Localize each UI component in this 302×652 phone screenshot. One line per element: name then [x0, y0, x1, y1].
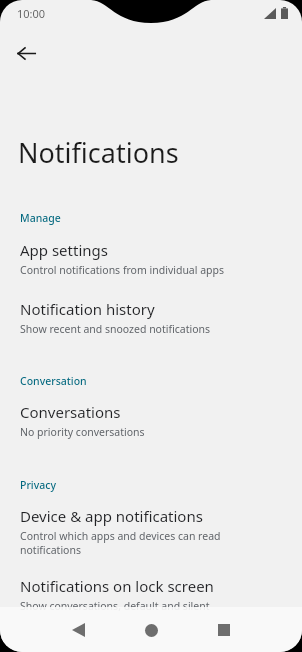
button[interactable]: Back: [58, 610, 98, 650]
staticText: Control which apps and devices can read …: [20, 529, 221, 557]
staticText: Manage: [20, 211, 61, 225]
staticText: Show conversations, default and silent: [20, 599, 210, 613]
button[interactable]: Back: [8, 35, 44, 71]
staticText: No priority conversations: [20, 425, 145, 439]
staticText: Conversation: [20, 374, 87, 388]
staticText: Privacy: [20, 478, 56, 492]
staticText: Notifications: [18, 134, 179, 171]
staticText: Notifications on lock screen: [20, 576, 214, 596]
button[interactable]: Home: [131, 610, 171, 650]
button[interactable]: Recent apps: [204, 610, 244, 650]
staticText: Control notifications from individual ap…: [20, 263, 225, 277]
button[interactable]: App settings: [0, 240, 302, 277]
staticText: Notification history: [20, 299, 155, 319]
staticText: Device & app notifications: [20, 506, 203, 526]
button[interactable]: Conversations: [0, 402, 302, 439]
button[interactable]: Device & app notifications: [0, 506, 302, 557]
staticText: 10:00: [17, 6, 46, 21]
staticText: Show recent and snoozed notifications: [20, 322, 211, 336]
button[interactable]: Notification history: [0, 299, 302, 336]
staticText: Conversations: [20, 402, 121, 422]
button[interactable]: Notifications on lock screen: [0, 576, 302, 613]
staticText: App settings: [20, 240, 108, 260]
